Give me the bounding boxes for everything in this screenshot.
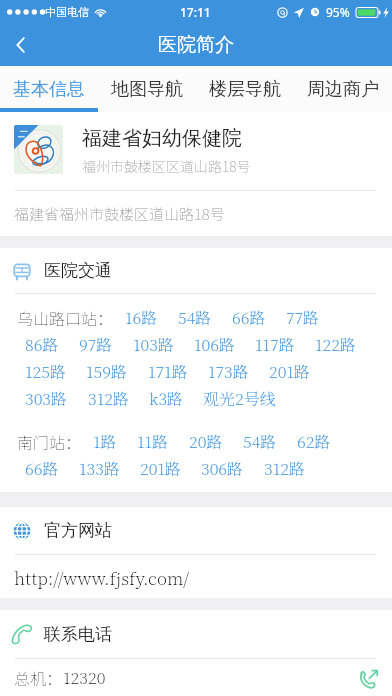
staticText: 312路 — [264, 457, 305, 480]
button[interactable]: 117路 — [245, 333, 305, 356]
button[interactable]: Call — [354, 663, 384, 693]
staticText: 20路 — [189, 430, 223, 453]
button[interactable]: 97路 — [69, 333, 123, 356]
staticText: 基本信息 — [13, 78, 85, 101]
staticText: 福州市鼓楼区区道山路18号 — [82, 156, 251, 176]
button[interactable]: Back — [0, 24, 42, 66]
button[interactable]: 77路 — [276, 306, 330, 329]
staticText: 117路 — [255, 333, 295, 356]
staticText: 中国电信 — [45, 5, 89, 19]
staticText: 南门站： — [17, 430, 82, 453]
button[interactable]: 306路 — [191, 457, 254, 480]
staticText: 125路 — [25, 360, 66, 383]
button[interactable]: 103路 — [123, 333, 184, 356]
button[interactable]: 医院交通 — [0, 248, 392, 293]
button[interactable]: 66路 — [15, 457, 69, 480]
button[interactable]: 20路 — [179, 430, 233, 453]
button[interactable]: 16路 — [115, 306, 168, 329]
staticText: 62路 — [297, 430, 331, 453]
staticText: http://www.fjsfy.com/ — [14, 565, 189, 589]
staticText: 312路 — [88, 387, 129, 410]
staticText: 106路 — [194, 333, 235, 356]
button[interactable]: 159路 — [76, 360, 138, 383]
staticText: 201路 — [269, 360, 310, 383]
staticText: 122路 — [315, 333, 356, 356]
button[interactable]: 周边商户 — [294, 66, 392, 112]
staticText: 303路 — [25, 387, 68, 410]
button[interactable]: 86路 — [15, 333, 69, 356]
staticText: 171路 — [148, 360, 188, 383]
staticText: 联系电话 — [44, 624, 112, 645]
button[interactable]: 312路 — [78, 387, 139, 410]
staticText: 54路 — [178, 306, 212, 329]
staticText: 54路 — [243, 430, 277, 453]
staticText: 官方网站 — [44, 520, 112, 541]
staticText: 103路 — [133, 333, 174, 356]
button[interactable]: 173路 — [198, 360, 259, 383]
staticText: 16路 — [125, 306, 158, 329]
staticText: 医院简介 — [158, 33, 234, 57]
staticText: 11路 — [137, 430, 169, 453]
button[interactable]: 171路 — [138, 360, 198, 383]
staticText: 97路 — [79, 333, 113, 356]
button[interactable]: 201路 — [259, 360, 320, 383]
staticText: 66路 — [232, 306, 266, 329]
staticText: 133路 — [79, 457, 120, 480]
button[interactable]: 地图导航 — [98, 66, 196, 112]
button[interactable]: 基本信息 — [0, 66, 98, 112]
staticText: 总机： — [14, 666, 63, 689]
button[interactable]: 54路 — [233, 430, 287, 453]
button[interactable]: http://www.fjsfy.com/ — [0, 555, 392, 598]
staticText: 医院交通 — [44, 260, 112, 281]
button[interactable]: 62路 — [287, 430, 341, 453]
staticText: 86路 — [25, 333, 59, 356]
staticText: 福建省妇幼保健院 — [82, 126, 242, 151]
staticText: 周边商户 — [307, 78, 379, 101]
staticText: 173路 — [208, 360, 249, 383]
button[interactable]: 201路 — [130, 457, 191, 480]
button[interactable]: 66路 — [222, 306, 276, 329]
staticText: 观光2号线 — [203, 387, 276, 410]
button[interactable]: 福建省妇幼保健院 — [0, 112, 392, 190]
staticText: 66路 — [25, 457, 59, 480]
button[interactable]: 11路 — [127, 430, 179, 453]
button[interactable]: 楼层导航 — [196, 66, 294, 112]
button[interactable]: 133路 — [69, 457, 130, 480]
button[interactable]: 303路 — [15, 387, 78, 410]
button[interactable]: 54路 — [168, 306, 222, 329]
staticText: 乌山路口站： — [17, 306, 114, 329]
button[interactable]: 106路 — [184, 333, 245, 356]
button[interactable]: 联系电话 — [0, 610, 392, 658]
staticText: 159路 — [86, 360, 128, 383]
staticText: 95% — [326, 4, 350, 20]
button[interactable]: k3路 — [139, 387, 193, 410]
button[interactable]: 122路 — [305, 333, 366, 356]
staticText: k3路 — [149, 387, 183, 410]
staticText: 楼层导航 — [209, 78, 281, 101]
staticText: 福建省福州市鼓楼区道山路18号 — [14, 203, 225, 225]
button[interactable]: 总机： — [0, 659, 392, 696]
staticText: 77路 — [286, 306, 320, 329]
staticText: 306路 — [201, 457, 244, 480]
button[interactable]: 1路 — [83, 430, 127, 453]
staticText: 17:11 — [180, 4, 211, 20]
staticText: 地图导航 — [111, 78, 183, 101]
staticText: 12320 — [63, 666, 106, 689]
staticText: 201路 — [140, 457, 181, 480]
staticText: 1路 — [93, 430, 117, 453]
button[interactable]: 312路 — [254, 457, 315, 480]
button[interactable]: 125路 — [15, 360, 76, 383]
button[interactable]: 官方网站 — [0, 507, 392, 554]
button[interactable]: 观光2号线 — [193, 387, 286, 410]
